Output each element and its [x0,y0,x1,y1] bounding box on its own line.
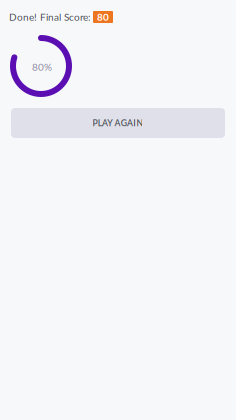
staticText: Done! Final Score: [9,11,91,23]
staticText: 80% [32,61,52,73]
button[interactable]: PLAY AGAIN [11,108,225,138]
staticText: 80 [97,11,109,23]
staticText: PLAY AGAIN [93,118,143,128]
